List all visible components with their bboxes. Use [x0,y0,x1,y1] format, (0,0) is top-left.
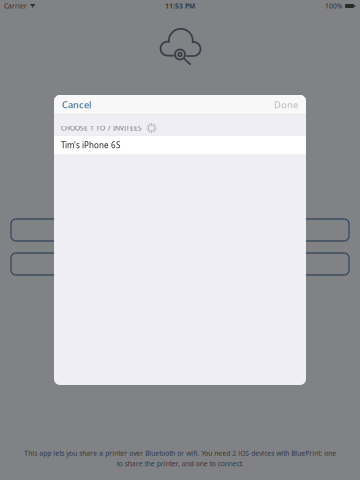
staticText: Tim's iPhone 6S [61,140,120,150]
staticText: 11:53 PM [165,2,195,10]
button[interactable]: Share this printer [11,219,349,241]
staticText: 100% [325,2,343,10]
staticText: CHOOSE 1 TO 7 INVITEES [61,124,142,132]
button[interactable]: Done [271,96,301,114]
button[interactable]: Connect to a shared printer [11,253,349,275]
staticText: Carrier [4,2,27,10]
staticText: Done [274,99,298,111]
staticText: This app lets you share a printer over B… [24,449,336,468]
button[interactable]: Cancel [59,96,95,114]
staticText: Cancel [62,99,92,111]
